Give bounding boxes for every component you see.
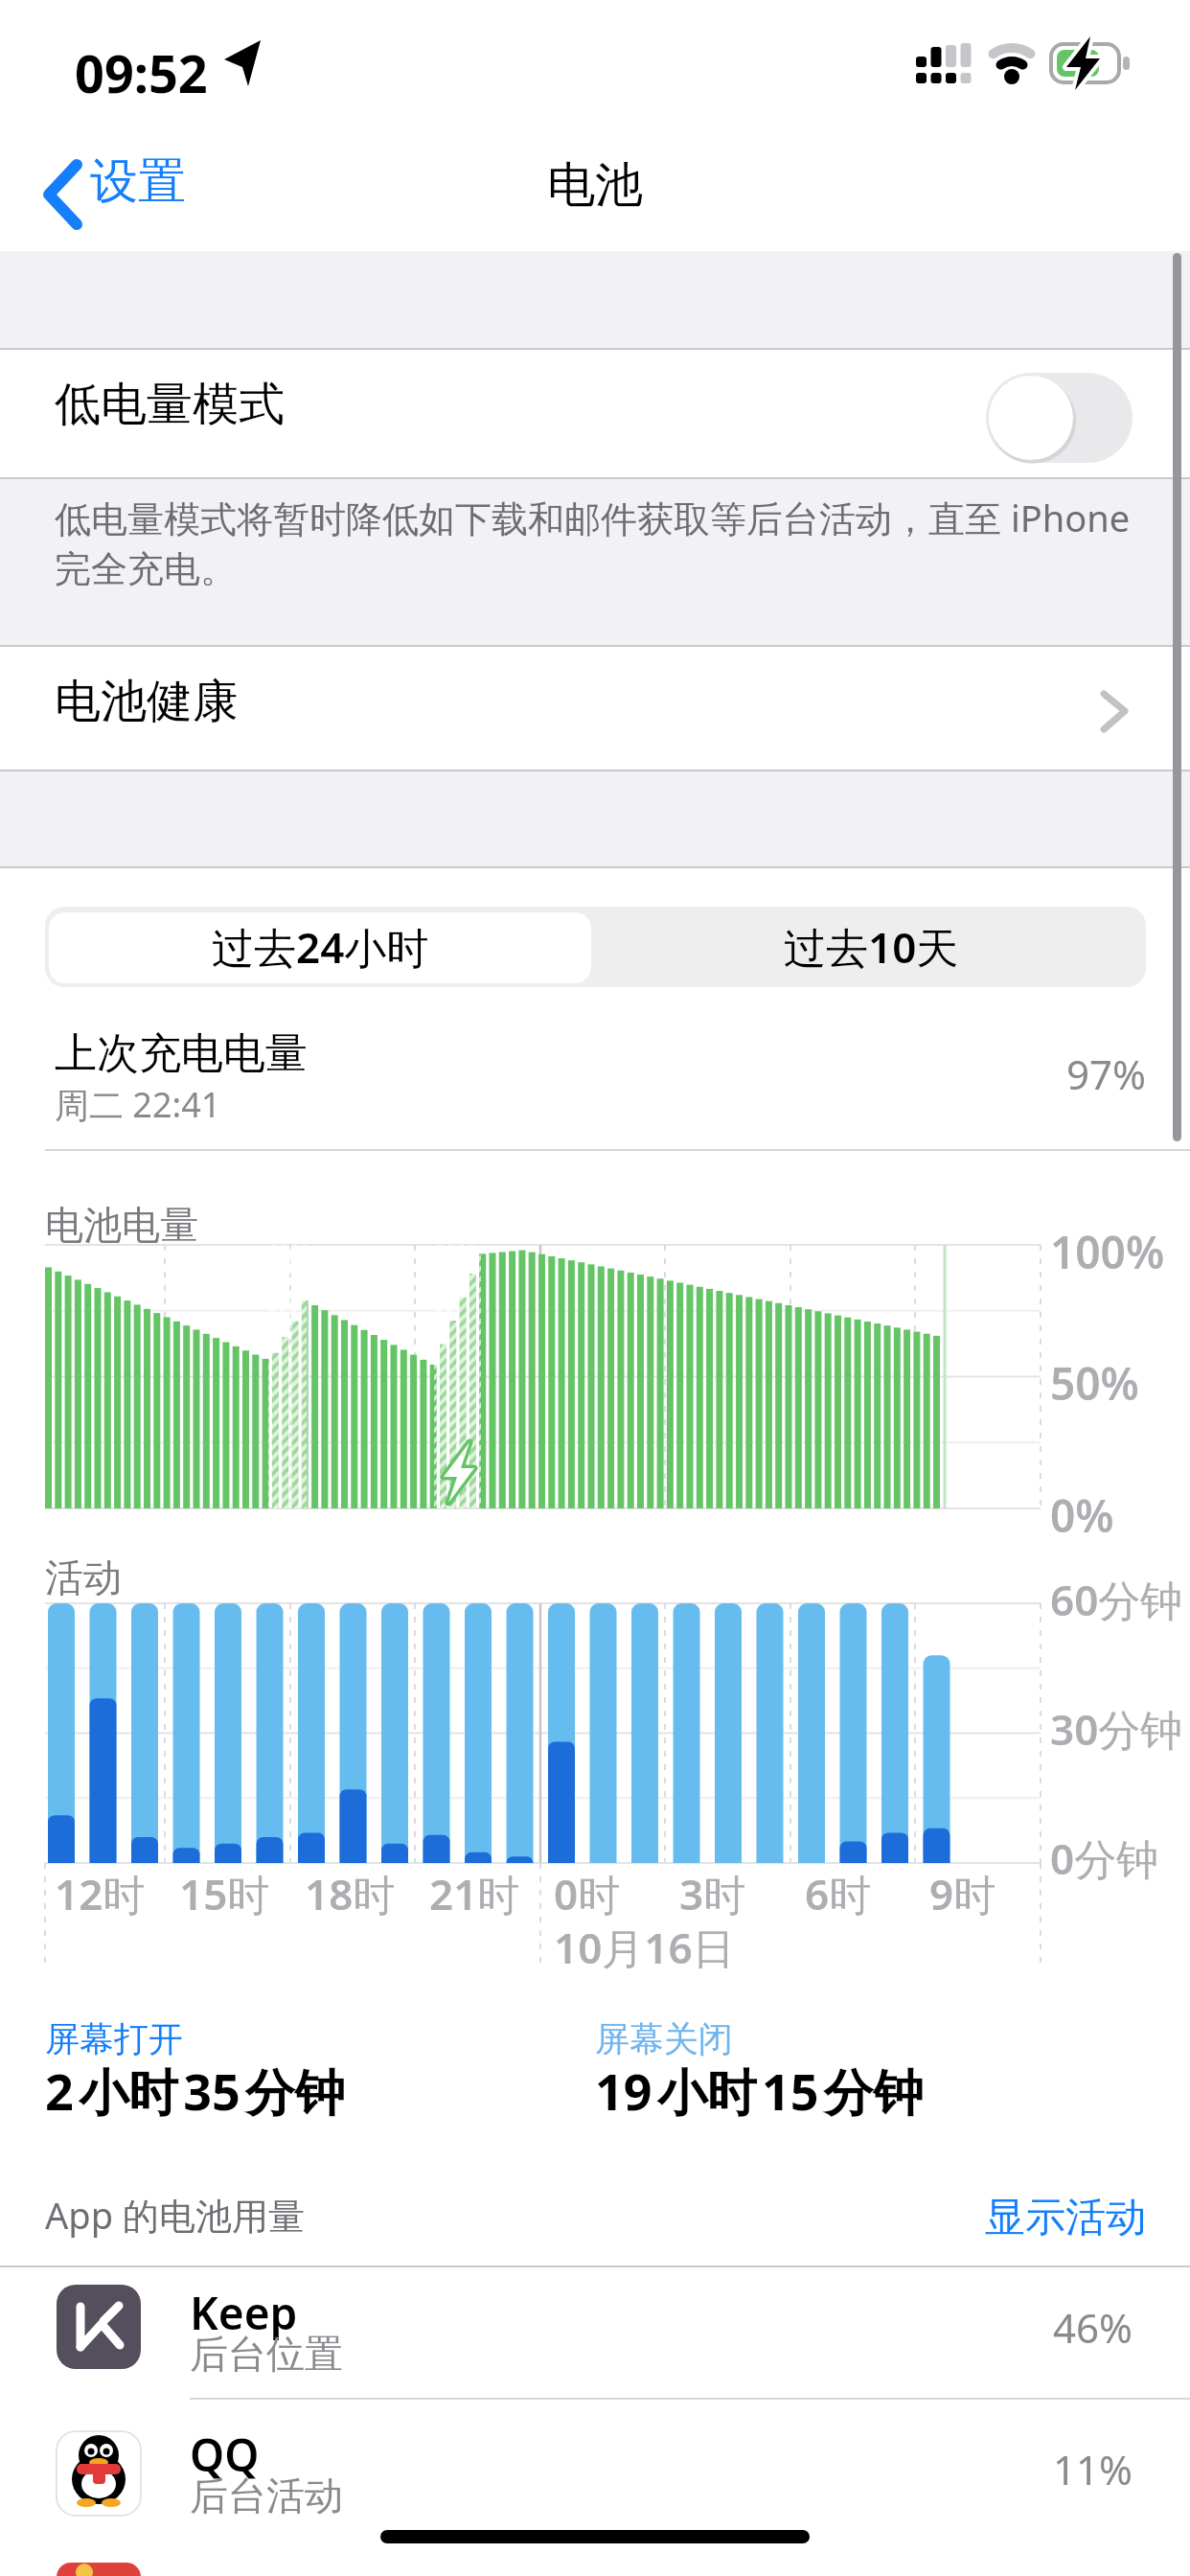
staticText: App 的电池用量 <box>45 2190 305 2240</box>
staticText: 11% <box>1053 2442 1133 2488</box>
staticText: 19 小时 15 分钟 <box>595 2057 924 2125</box>
staticText: 09:52 <box>75 37 208 108</box>
staticText: 上次充电电量 <box>55 1027 308 1080</box>
button[interactable] <box>596 907 1146 987</box>
button[interactable] <box>906 2185 1146 2242</box>
staticText: 9时 <box>929 1865 996 1922</box>
staticText: 6时 <box>805 1865 872 1922</box>
staticText: 活动 <box>45 1553 122 1601</box>
button[interactable] <box>0 2400 1190 2530</box>
staticText: 21时 <box>429 1865 520 1922</box>
staticText: 3时 <box>679 1865 746 1922</box>
button[interactable] <box>0 350 1190 477</box>
staticText: 15时 <box>179 1865 270 1922</box>
staticText: 电池电量 <box>45 1201 198 1249</box>
staticText: 过去24小时 <box>212 918 429 976</box>
staticText: 60分钟 <box>1050 1571 1183 1628</box>
staticText: 97% <box>1066 1046 1146 1092</box>
staticText: 2 小时 35 分钟 <box>45 2057 345 2125</box>
staticText: 后台活动 <box>190 2472 343 2519</box>
staticText: 18时 <box>305 1865 396 1922</box>
button[interactable] <box>0 647 1190 770</box>
staticText: 电池健康 <box>55 673 239 730</box>
staticText: 设置 <box>90 151 186 212</box>
staticText: 屏幕关闭 <box>595 2017 733 2060</box>
staticText: 0% <box>1050 1485 1114 1546</box>
staticText: 0时 <box>554 1865 621 1922</box>
staticText: 屏幕打开 <box>45 2017 183 2060</box>
staticText: 完全充电。 <box>55 546 237 592</box>
staticText: 50% <box>1050 1353 1139 1414</box>
staticText: 低电量模式 <box>55 376 285 433</box>
staticText: Keep <box>190 2283 298 2343</box>
staticText: 100% <box>1050 1222 1165 1282</box>
staticText: 30分钟 <box>1050 1700 1183 1758</box>
staticText: 后台位置 <box>190 2330 343 2378</box>
staticText: 12时 <box>55 1865 146 1922</box>
staticText: 显示活动 <box>985 2193 1146 2239</box>
staticText: 10月16日 <box>554 1919 735 1976</box>
staticText: 周二 22:41 <box>55 1081 221 1128</box>
staticText: 0分钟 <box>1050 1829 1159 1887</box>
button[interactable] <box>45 907 596 987</box>
button[interactable] <box>43 153 235 230</box>
staticText: 过去10天 <box>784 918 959 976</box>
staticText: 电池 <box>547 155 643 216</box>
staticText: QQ <box>190 2425 260 2485</box>
staticText: 低电量模式将暂时降低如下载和邮件获取等后台活动，直至 iPhone <box>55 493 1131 542</box>
staticText: 46% <box>1053 2300 1133 2346</box>
button[interactable] <box>0 2267 1190 2398</box>
